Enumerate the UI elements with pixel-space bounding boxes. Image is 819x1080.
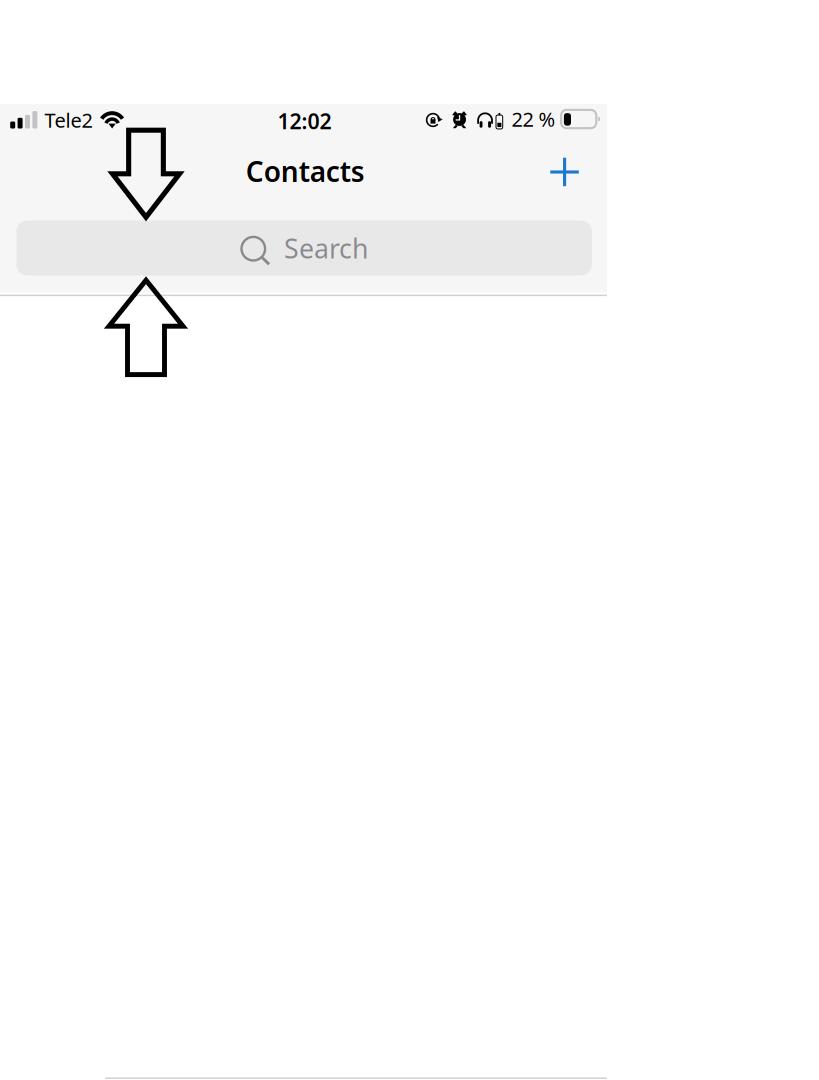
button[interactable]: Add contact <box>536 144 593 200</box>
button[interactable]: Search <box>16 220 592 275</box>
staticText: Search <box>284 230 368 266</box>
staticText: Tele2 <box>45 107 93 133</box>
staticText: 12:02 <box>277 107 331 135</box>
staticText: Contacts <box>246 153 365 190</box>
staticText: 22 % <box>511 106 555 132</box>
